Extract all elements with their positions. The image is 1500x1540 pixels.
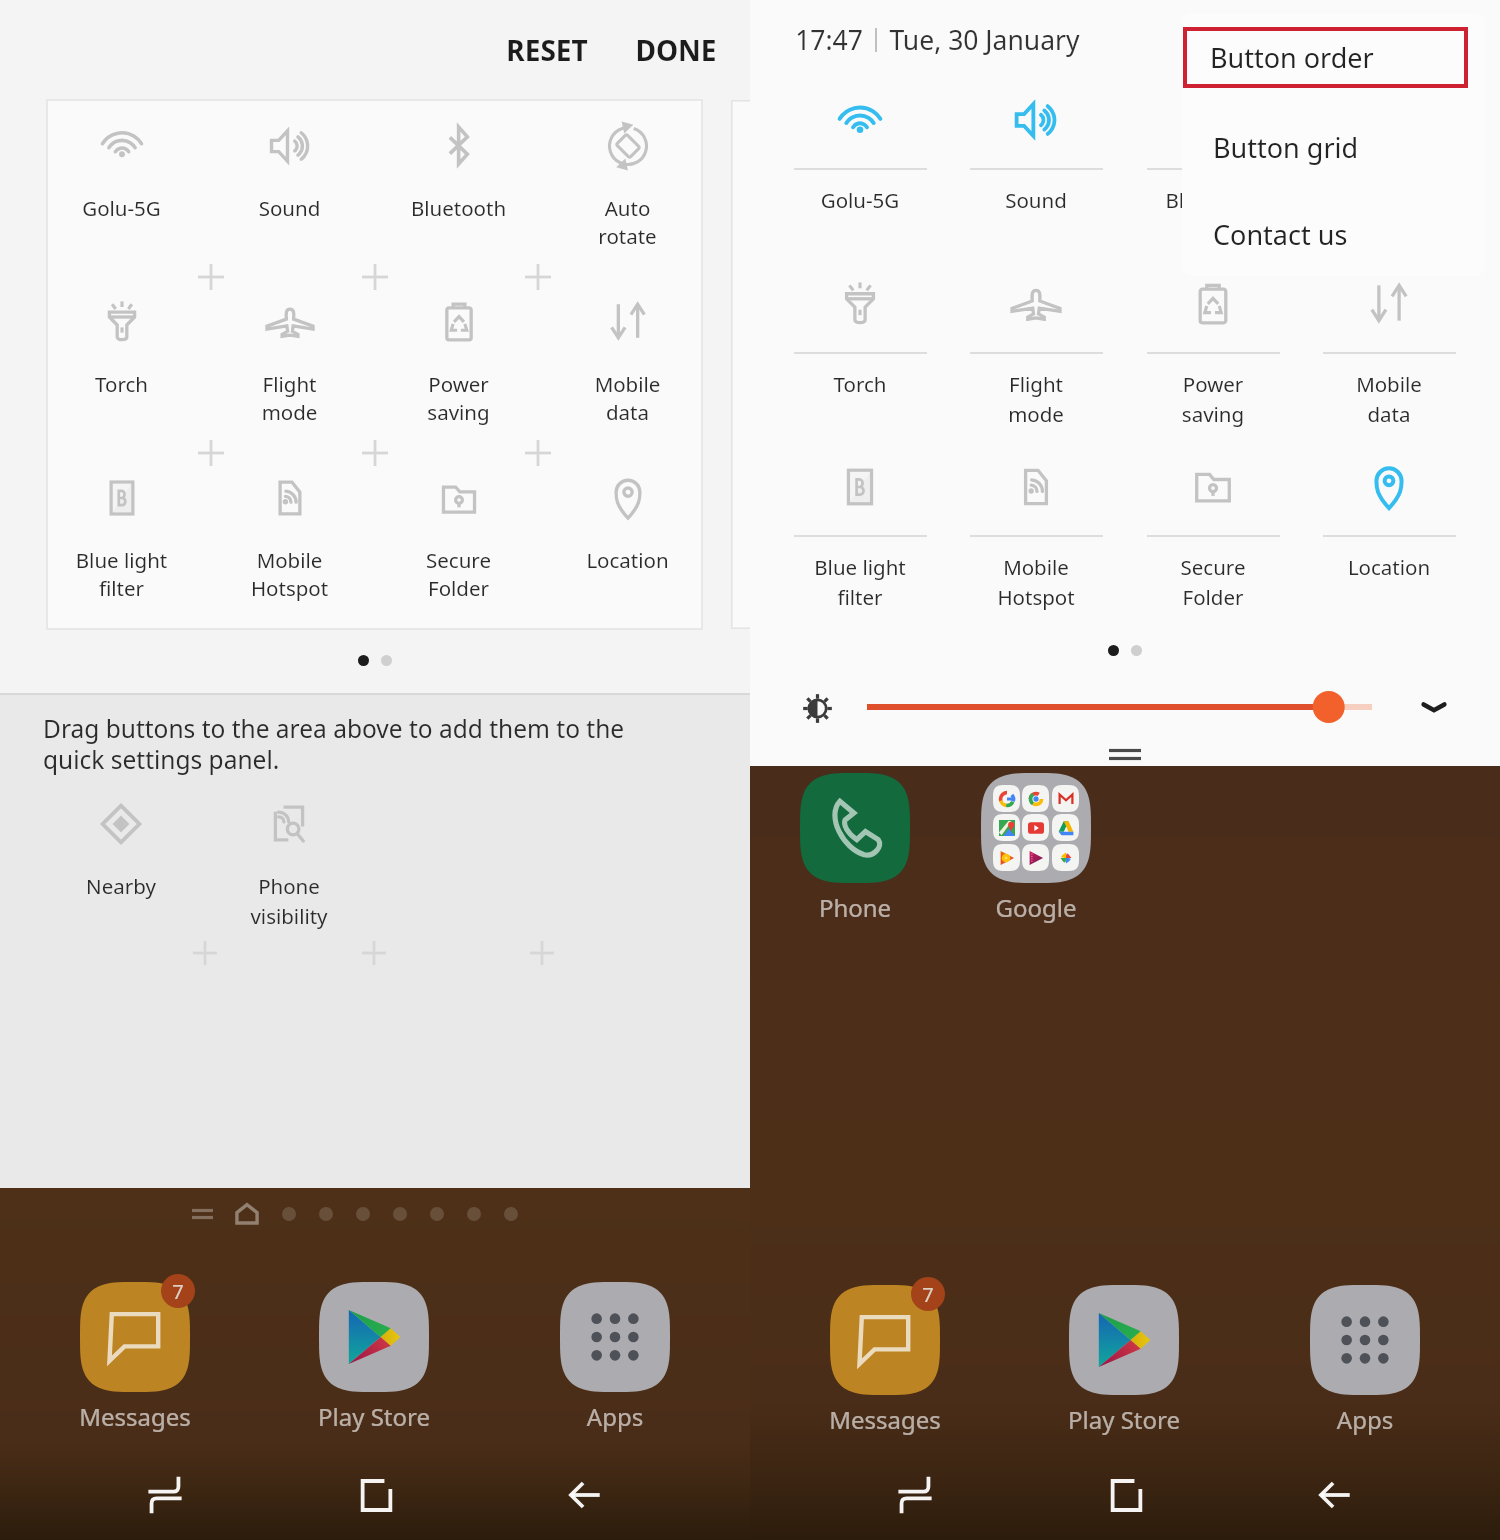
button[interactable]: Auto rotate: [1305, 86, 1473, 236]
button[interactable]: DONE: [615, 14, 737, 86]
staticText: Play Store: [1034, 1403, 1214, 1436]
staticText: Golu-5G: [37, 194, 206, 222]
staticText: 7: [922, 1281, 934, 1308]
staticText: Mobile data: [1305, 370, 1473, 428]
button[interactable]: Home: [316, 1450, 436, 1540]
button[interactable]: Secure Folder: [1129, 453, 1297, 603]
staticText: DONE: [635, 31, 717, 69]
staticText: Blue light filter: [37, 546, 206, 602]
button[interactable]: Mobile Hotspot: [952, 453, 1120, 603]
staticText: Messages: [795, 1403, 975, 1436]
staticText: Secure Folder: [374, 546, 543, 602]
button[interactable]: Button order: [1185, 29, 1466, 86]
staticText: Bluetooth: [374, 194, 543, 222]
button[interactable]: Mobile data: [1305, 270, 1473, 420]
staticText: Torch: [776, 370, 944, 398]
staticText: Drag buttons to the area above to add th…: [43, 712, 658, 776]
staticText: Button grid: [1213, 129, 1359, 166]
staticText: Apps: [1275, 1403, 1455, 1436]
button[interactable]: Messages: [795, 1285, 975, 1437]
staticText: Sound: [952, 186, 1120, 214]
staticText: Power saving: [374, 370, 543, 426]
button[interactable]: Back: [1275, 1450, 1395, 1540]
button[interactable]: Play Store: [284, 1282, 464, 1434]
button[interactable]: Contact us: [1185, 210, 1469, 258]
button[interactable]: Location: [543, 452, 712, 602]
staticText: Button order: [1210, 39, 1374, 76]
staticText: Location: [1305, 553, 1473, 581]
button[interactable]: Power saving: [1129, 270, 1297, 420]
button[interactable]: Mobile Hotspot: [205, 452, 374, 602]
staticText: Play Store: [284, 1400, 464, 1433]
staticText: Flight mode: [205, 370, 374, 426]
button[interactable]: Torch: [776, 270, 944, 420]
button[interactable]: Power saving: [374, 276, 543, 426]
staticText: Sound: [205, 194, 374, 222]
button[interactable]: Blue light filter: [776, 453, 944, 603]
button[interactable]: Secure Folder: [374, 452, 543, 602]
button[interactable]: Button grid: [1185, 123, 1469, 171]
button[interactable]: Nearby: [37, 804, 205, 924]
staticText: Flight mode: [952, 370, 1120, 428]
button[interactable]: Sound: [205, 100, 374, 250]
button[interactable]: Flight mode: [205, 276, 374, 426]
button[interactable]: Recents: [855, 1450, 975, 1540]
button[interactable]: Golu-5G: [776, 86, 944, 236]
staticText: Phone: [765, 891, 945, 924]
staticText: Mobile data: [543, 370, 712, 426]
staticText: Apps: [525, 1400, 705, 1433]
button[interactable]: Google: [946, 773, 1126, 925]
button[interactable]: Golu-5G: [37, 100, 206, 250]
button[interactable]: Bluetooth: [1129, 86, 1297, 236]
button[interactable]: Phone: [765, 773, 945, 925]
staticText: Phone visibility: [205, 872, 373, 930]
button[interactable]: Play Store: [1034, 1285, 1214, 1437]
staticText: Location: [543, 546, 712, 574]
staticText: Mobile Hotspot: [205, 546, 374, 602]
button[interactable]: Home: [1066, 1450, 1186, 1540]
staticText: Contact us: [1213, 216, 1348, 253]
button[interactable]: Recents: [105, 1450, 225, 1540]
button[interactable]: Sound: [952, 86, 1120, 236]
button[interactable]: Phone visibility: [205, 804, 373, 924]
button[interactable]: Auto rotate: [543, 100, 712, 250]
staticText: RESET: [506, 31, 588, 69]
button[interactable]: Expand: [1412, 685, 1456, 729]
staticText: Tue, 30 January: [889, 22, 1080, 58]
staticText: Auto rotate: [543, 194, 712, 250]
button[interactable]: Messages: [45, 1282, 225, 1434]
staticText: Bluetooth: [1129, 186, 1297, 214]
button[interactable]: Brightness: [795, 686, 839, 730]
staticText: Golu-5G: [776, 186, 944, 214]
staticText: Google: [946, 891, 1126, 924]
staticText: Mobile Hotspot: [952, 553, 1120, 611]
button[interactable]: Back: [525, 1450, 645, 1540]
staticText: 17:47: [795, 22, 863, 58]
staticText: 7: [172, 1278, 184, 1305]
button[interactable]: Blue light filter: [37, 452, 206, 602]
button[interactable]: Apps: [1275, 1285, 1455, 1437]
staticText: Blue light filter: [776, 553, 944, 611]
staticText: Secure Folder: [1129, 553, 1297, 611]
button[interactable]: Apps: [525, 1282, 705, 1434]
button[interactable]: Bluetooth: [374, 100, 543, 250]
button[interactable]: Torch: [37, 276, 206, 426]
staticText: Torch: [37, 370, 206, 398]
button[interactable]: Flight mode: [952, 270, 1120, 420]
staticText: Messages: [45, 1400, 225, 1433]
staticText: Power saving: [1129, 370, 1297, 428]
button[interactable]: Mobile data: [543, 276, 712, 426]
staticText: Nearby: [37, 872, 205, 900]
button[interactable]: RESET: [486, 14, 608, 86]
button[interactable]: Location: [1305, 453, 1473, 603]
